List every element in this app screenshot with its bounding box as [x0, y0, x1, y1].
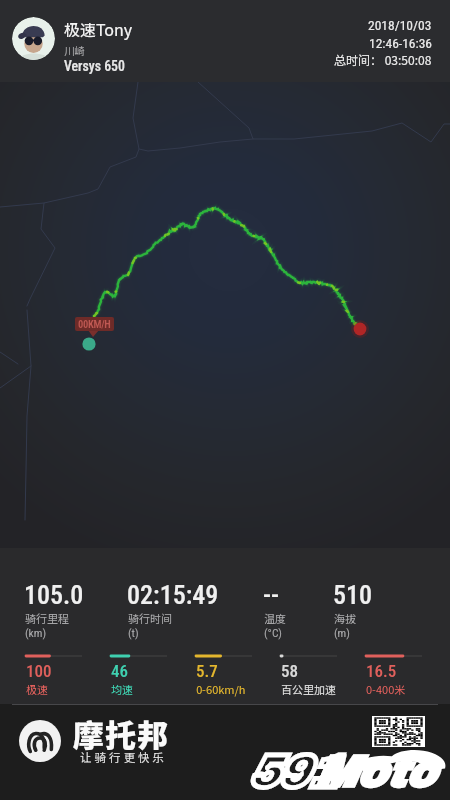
- staticText: (m): [334, 626, 350, 639]
- staticText: 海拔: [334, 610, 356, 626]
- staticText: 川崎: [64, 43, 85, 58]
- staticText: Versys 650: [64, 58, 125, 74]
- staticText: 温度: [264, 610, 286, 626]
- staticText: 5.7: [196, 661, 218, 681]
- staticText: --: [263, 580, 280, 610]
- staticText: 均速: [111, 681, 133, 697]
- staticText: 让骑行更快乐: [80, 749, 167, 766]
- staticText: 00KM/H: [78, 318, 111, 330]
- staticText: 总时间： 03:50:08: [334, 51, 432, 68]
- staticText: 46: [111, 661, 128, 681]
- staticText: (km): [25, 626, 47, 639]
- staticText: 16.5: [366, 661, 397, 681]
- staticText: 0-400米: [366, 681, 406, 697]
- staticText: 12:46-16:36: [369, 35, 432, 51]
- staticText: Moto: [314, 748, 434, 796]
- staticText: 2018/10/03: [368, 17, 432, 33]
- staticText: 02:15:49: [127, 580, 219, 610]
- button[interactable]: Profile avatar: [12, 17, 55, 60]
- staticText: 510: [333, 580, 372, 610]
- staticText: 0-60km/h: [196, 681, 246, 697]
- staticText: 58: [281, 661, 298, 681]
- staticText: 极速: [26, 681, 48, 697]
- staticText: 百公里加速: [281, 681, 336, 697]
- staticText: 骑行里程: [25, 610, 69, 626]
- staticText: 591: [248, 748, 337, 796]
- staticText: 骑行时间: [128, 610, 172, 626]
- staticText: 摩托邦: [73, 711, 169, 756]
- staticText: 100: [26, 661, 52, 681]
- staticText: (°C): [264, 626, 282, 639]
- staticText: (t): [128, 626, 139, 639]
- staticText: 105.0: [24, 580, 84, 610]
- staticText: 极速Tony: [64, 17, 133, 40]
